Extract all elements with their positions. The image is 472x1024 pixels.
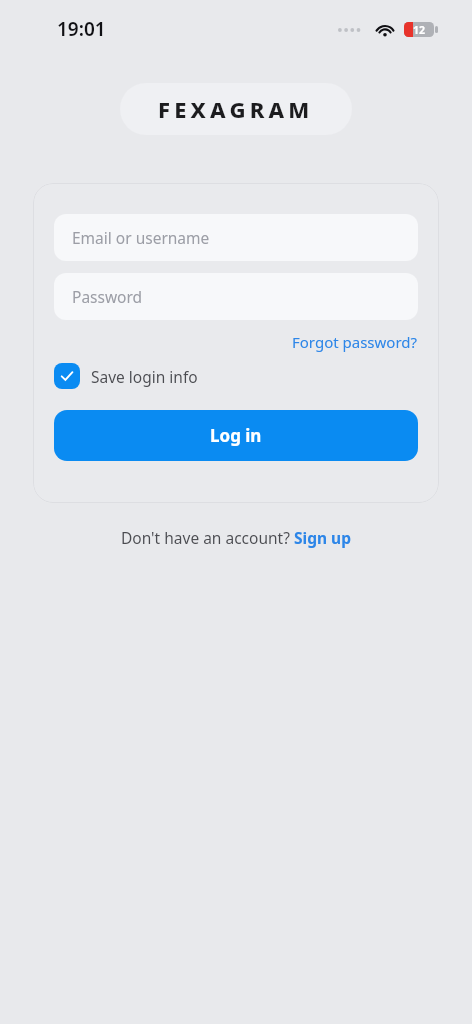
staticText: 12 [413,23,426,37]
button[interactable]: Forgot password? [292,332,418,352]
staticText: Email or username [72,227,210,248]
staticText: FEXAGRAM [158,94,314,124]
staticText: Don't have an account? [121,527,294,548]
staticText: Forgot password? [292,332,418,352]
staticText: Save login info [91,366,198,387]
button[interactable]: Log in [54,410,418,461]
staticText: Password [72,286,143,307]
staticText: Sign up [294,527,351,548]
button[interactable]: Password [54,273,418,320]
other: Save login info checkbox [54,363,80,389]
button[interactable]: Save login info checkbox [54,361,198,391]
button[interactable]: Email or username [54,214,418,261]
staticText: Log in [210,424,262,447]
staticText: 19:01 [57,16,106,42]
button[interactable]: Sign up [294,527,351,548]
button[interactable]: FEXAGRAM [120,83,352,135]
